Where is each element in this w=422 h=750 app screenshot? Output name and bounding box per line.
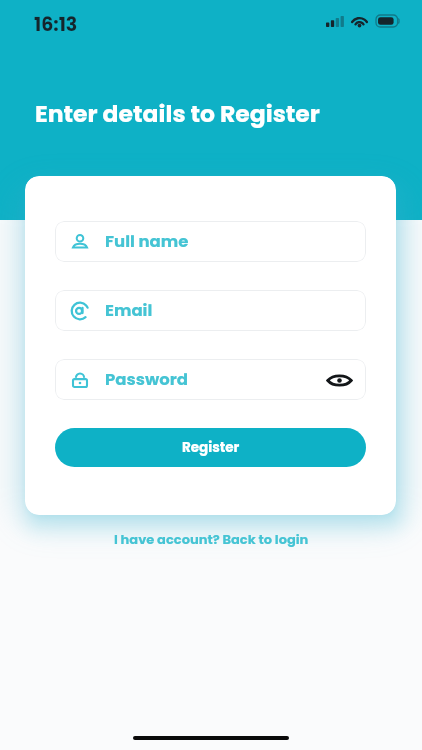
button[interactable]: Email (55, 290, 366, 331)
staticText: 16:13 (34, 11, 78, 38)
button[interactable]: Show password (326, 369, 353, 391)
button[interactable]: I have account? Back to login (108, 525, 315, 553)
staticText: Full name (105, 230, 189, 253)
button[interactable]: Register (55, 428, 366, 467)
staticText: Email (105, 299, 153, 322)
staticText: Password (105, 368, 188, 391)
staticText: Enter details to Register (35, 97, 320, 130)
button[interactable]: Full name (55, 221, 366, 262)
staticText: Register (182, 438, 240, 457)
button[interactable]: Password (55, 359, 366, 400)
staticText: I have account? Back to login (114, 530, 309, 548)
